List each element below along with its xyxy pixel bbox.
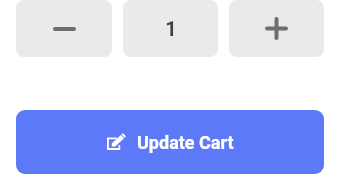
- staticText: Update Cart: [137, 132, 234, 153]
- button[interactable]: Decrease quantity: [16, 0, 112, 57]
- button[interactable]: Increase quantity: [229, 0, 324, 57]
- staticText: 1: [165, 17, 177, 40]
- button[interactable]: 1: [123, 0, 218, 57]
- button[interactable]: Update Cart: [16, 110, 324, 174]
